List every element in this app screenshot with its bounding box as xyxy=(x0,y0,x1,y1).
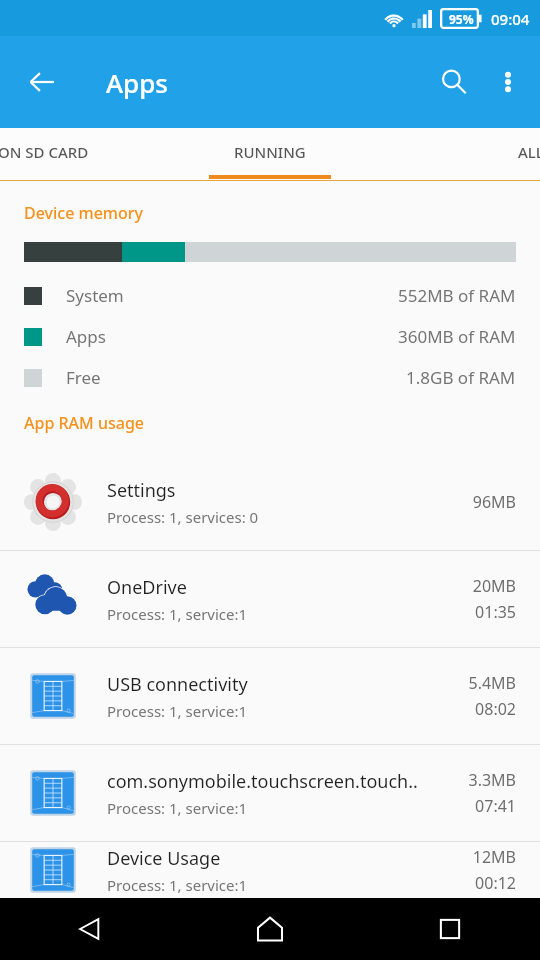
staticText: 00:12 xyxy=(475,872,516,894)
staticText: Process: 1, service:1 xyxy=(107,604,248,624)
staticText: Apps xyxy=(106,65,168,100)
staticText: 12MB xyxy=(472,846,516,868)
button[interactable]: OneDrive xyxy=(0,551,540,647)
staticText: Apps xyxy=(66,325,106,348)
staticText: 20MB xyxy=(472,575,516,597)
staticText: 5.4MB xyxy=(468,672,516,694)
staticText: Process: 1, services: 0 xyxy=(107,507,259,527)
button[interactable]: Device Usage xyxy=(0,842,540,898)
button[interactable]: Search xyxy=(426,54,482,110)
staticText: 95% xyxy=(449,11,474,27)
button[interactable]: System xyxy=(0,275,540,316)
button[interactable]: Apps xyxy=(0,316,540,357)
button[interactable]: Free xyxy=(0,357,540,398)
staticText: 08:02 xyxy=(475,698,516,720)
button[interactable]: Back xyxy=(0,898,180,960)
button[interactable]: ALL xyxy=(514,142,540,162)
staticText: Device Usage xyxy=(107,846,221,871)
button[interactable]: More options xyxy=(482,56,534,108)
staticText: 360MB of RAM xyxy=(398,325,516,348)
staticText: OneDrive xyxy=(107,575,187,600)
staticText: com.sonymobile.touchscreen.touch.. xyxy=(107,769,418,794)
staticText: Process: 1, service:1 xyxy=(107,798,248,818)
staticText: System xyxy=(66,284,124,307)
staticText: Settings xyxy=(107,478,176,503)
staticText: 552MB of RAM xyxy=(398,284,516,307)
button[interactable]: USB connectivity xyxy=(0,648,540,744)
staticText: 07:41 xyxy=(475,795,516,817)
staticText: 1.8GB of RAM xyxy=(406,366,516,389)
button[interactable]: Settings xyxy=(0,454,540,550)
staticText: 01:35 xyxy=(475,601,516,623)
staticText: Device memory xyxy=(24,202,143,224)
button[interactable]: ON SD CARD xyxy=(0,142,93,162)
button[interactable]: Home xyxy=(180,898,360,960)
button[interactable]: Back xyxy=(14,54,70,110)
button[interactable]: Recent apps xyxy=(360,898,540,960)
staticText: 3.3MB xyxy=(468,769,516,791)
staticText: 09:04 xyxy=(491,9,530,29)
staticText: App RAM usage xyxy=(24,412,144,434)
staticText: 96MB xyxy=(472,491,516,513)
staticText: Process: 1, service:1 xyxy=(107,701,248,721)
button[interactable]: RUNNING xyxy=(224,142,316,162)
staticText: Process: 1, service:1 xyxy=(107,875,248,895)
button[interactable]: com.sonymobile.touchscreen.touch.. xyxy=(0,745,540,841)
staticText: Free xyxy=(66,366,101,389)
staticText: USB connectivity xyxy=(107,672,248,697)
